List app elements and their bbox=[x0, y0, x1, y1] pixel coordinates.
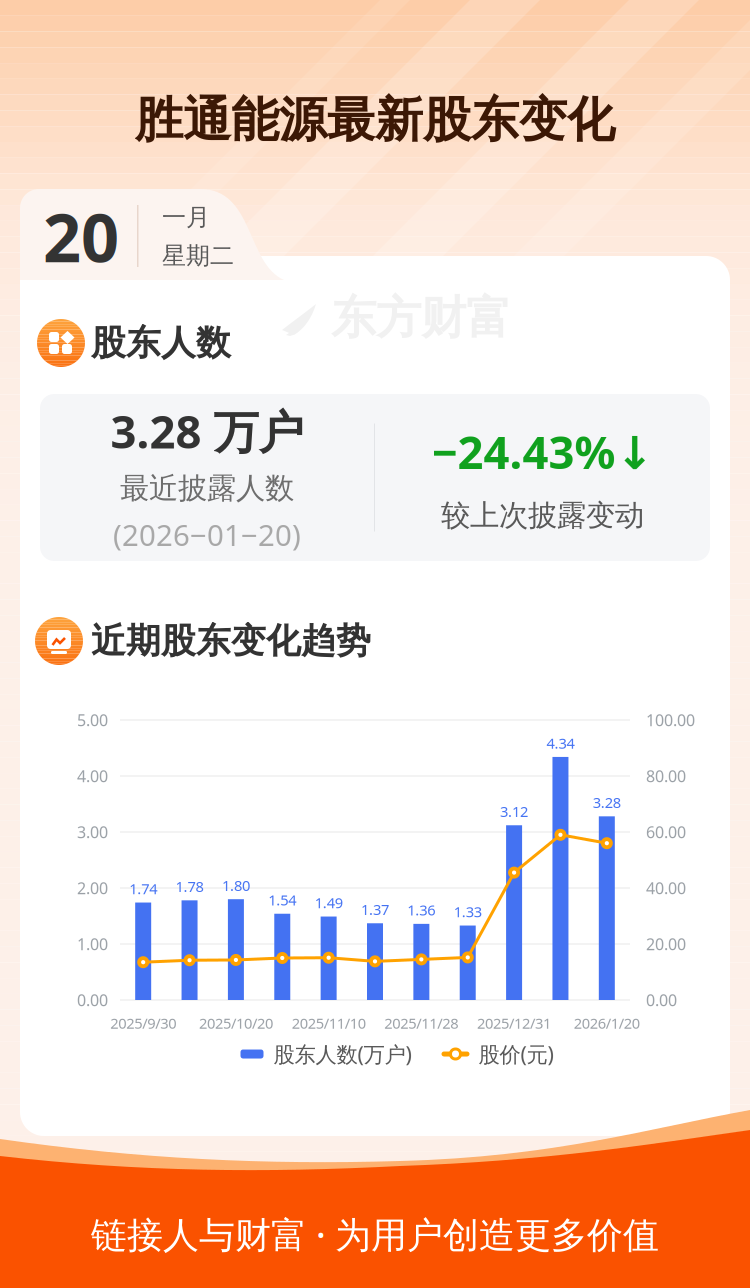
staticText: 80.00 bbox=[646, 765, 686, 787]
staticText: −24.43%↓ bbox=[431, 421, 653, 482]
staticText: 1.49 bbox=[315, 893, 343, 912]
staticText: 60.00 bbox=[646, 821, 686, 843]
staticText: 0.00 bbox=[77, 989, 108, 1011]
staticText: 20 bbox=[43, 192, 119, 281]
staticText: 1.80 bbox=[222, 875, 250, 895]
staticText: 股价(元) bbox=[478, 1040, 553, 1068]
staticText: 1.33 bbox=[454, 902, 482, 921]
staticText: 较上次披露变动 bbox=[441, 498, 644, 534]
staticText: 1.74 bbox=[129, 879, 157, 898]
staticText: 2025/9/30 bbox=[110, 1013, 176, 1033]
staticText: 2.00 bbox=[77, 877, 108, 899]
staticText: 1.37 bbox=[361, 899, 389, 919]
staticText: 4.34 bbox=[546, 733, 574, 753]
staticText: 星期二 bbox=[162, 241, 234, 270]
staticText: 1.54 bbox=[268, 890, 296, 909]
staticText: 0.00 bbox=[646, 989, 677, 1011]
staticText: 3.12 bbox=[500, 801, 528, 821]
staticText: 2025/11/28 bbox=[384, 1013, 458, 1033]
staticText: 链接人与财富 · 为用户创造更多价值 bbox=[91, 1210, 659, 1258]
staticText: 近期股东变化趋势 bbox=[91, 620, 371, 662]
staticText: 2025/10/20 bbox=[199, 1013, 273, 1033]
staticText: 1.00 bbox=[77, 933, 108, 955]
staticText: 3.28 万户 bbox=[110, 401, 303, 461]
staticText: 3.28 bbox=[593, 793, 621, 812]
staticText: 胜通能源最新股东变化 bbox=[135, 90, 615, 149]
staticText: 股东人数(万户) bbox=[273, 1040, 411, 1068]
staticText: (2026−01−20) bbox=[113, 515, 301, 554]
staticText: 2025/11/10 bbox=[292, 1013, 366, 1033]
staticText: 3.00 bbox=[77, 821, 108, 843]
staticText: 4.00 bbox=[77, 765, 108, 787]
staticText: 东方财富 bbox=[331, 290, 511, 346]
staticText: 100.00 bbox=[646, 709, 695, 731]
staticText: 20.00 bbox=[646, 933, 686, 955]
staticText: 最近披露人数 bbox=[120, 470, 294, 506]
staticText: 一月 bbox=[162, 202, 210, 232]
staticText: 1.36 bbox=[407, 900, 435, 920]
staticText: 5.00 bbox=[77, 709, 108, 731]
staticText: 1.78 bbox=[175, 877, 203, 896]
staticText: 2025/12/31 bbox=[477, 1013, 551, 1033]
staticText: 40.00 bbox=[646, 877, 686, 899]
staticText: 2026/1/20 bbox=[574, 1013, 640, 1033]
staticText: 股东人数 bbox=[91, 322, 231, 364]
